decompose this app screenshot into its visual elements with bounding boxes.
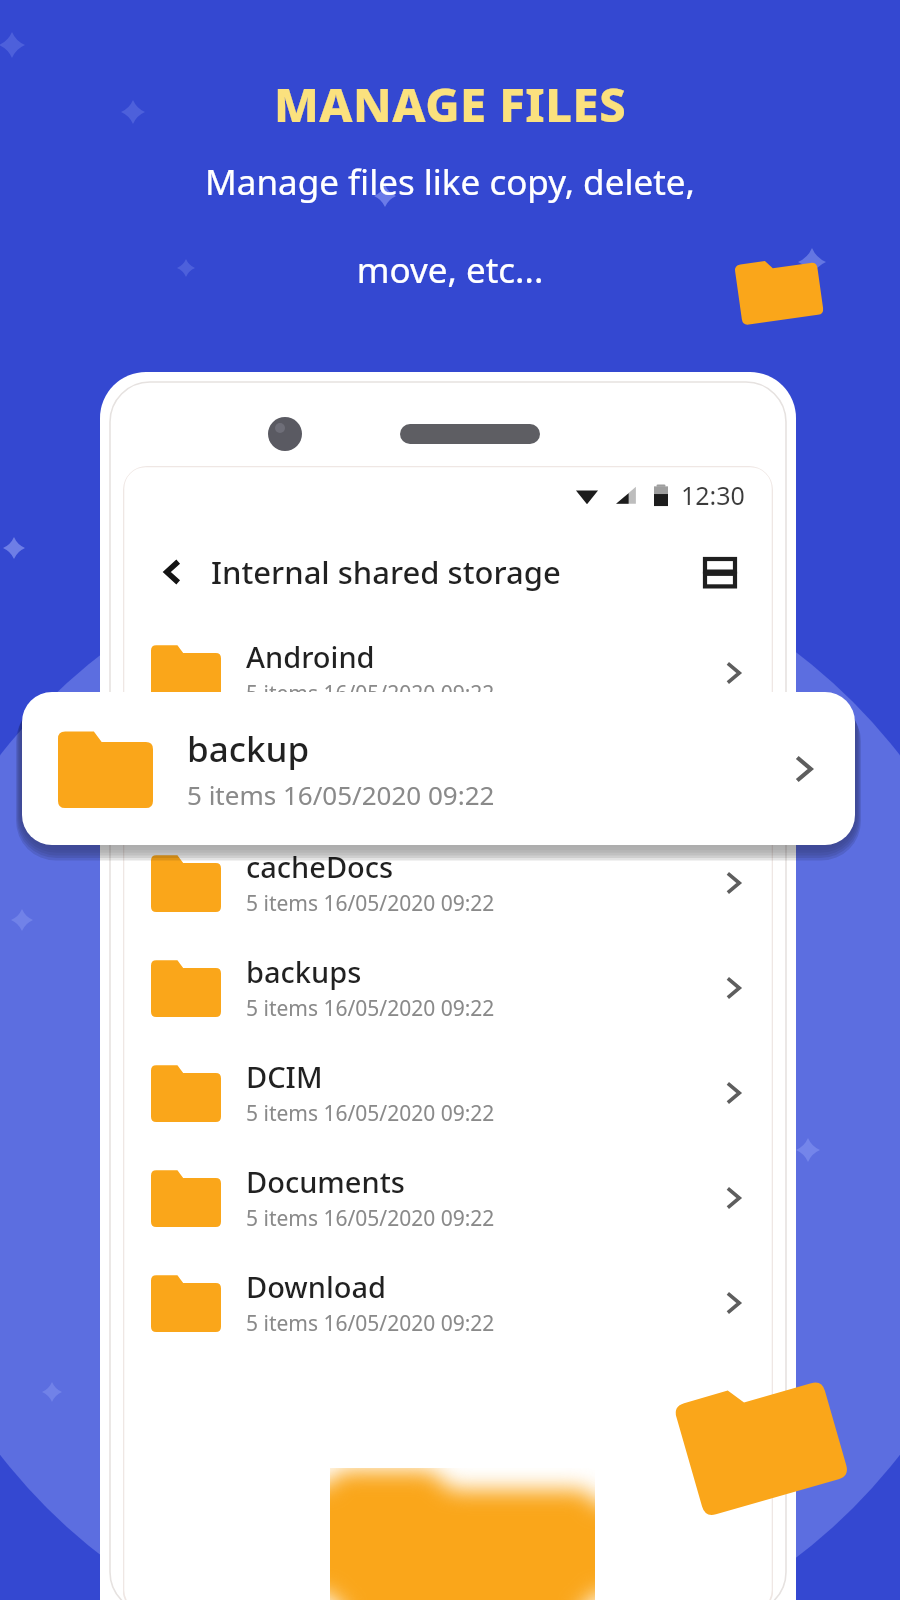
- button[interactable]: Documents: [123, 1145, 773, 1250]
- button[interactable]: backup: [123, 725, 773, 830]
- button[interactable]: backups: [123, 935, 773, 1040]
- staticText: backup: [246, 742, 348, 781]
- staticText: 12:30: [681, 478, 745, 512]
- button[interactable]: Androind: [123, 620, 773, 725]
- staticText: 5 items 16/05/2020 09:22: [246, 784, 495, 813]
- button[interactable]: cacheDocs: [123, 830, 773, 935]
- staticText: 5 items 16/05/2020 09:22: [246, 679, 495, 708]
- button[interactable]: backup: [22, 692, 855, 845]
- staticText: cacheDocs: [246, 847, 394, 886]
- staticText: Documents: [246, 1162, 405, 1201]
- staticText: MANAGE FILES: [274, 72, 627, 136]
- staticText: 5 items 16/05/2020 09:22: [246, 1099, 495, 1128]
- staticText: 5 items 16/05/2020 09:22: [187, 777, 495, 812]
- staticText: 5 items 16/05/2020 09:22: [246, 889, 495, 918]
- staticText: 5 items 16/05/2020 09:22: [246, 1204, 495, 1233]
- button[interactable]: DCIM: [123, 1040, 773, 1145]
- staticText: backup: [187, 725, 310, 773]
- staticText: DCIM: [246, 1057, 323, 1096]
- button[interactable]: Download: [123, 1250, 773, 1355]
- staticText: Download: [246, 1267, 387, 1306]
- staticText: Internal shared storage: [211, 551, 561, 593]
- staticText: Manage files like copy, delete, move, et…: [60, 158, 840, 293]
- staticText: 5 items 16/05/2020 09:22: [246, 1309, 495, 1338]
- staticText: Androind: [246, 637, 375, 676]
- button[interactable]: Switch view: [695, 547, 745, 597]
- staticText: backups: [246, 952, 362, 991]
- button[interactable]: Back: [149, 548, 197, 596]
- staticText: 5 items 16/05/2020 09:22: [246, 994, 495, 1023]
